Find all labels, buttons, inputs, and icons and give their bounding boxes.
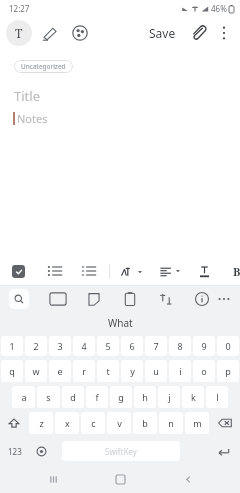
button[interactable]: Emoji xyxy=(30,436,52,466)
button[interactable]: c xyxy=(81,412,105,434)
button[interactable]: 9 xyxy=(193,336,215,356)
button[interactable]: t xyxy=(97,360,119,382)
staticText: g xyxy=(118,391,124,403)
button[interactable]: More options xyxy=(214,22,234,44)
staticText: SwiftKey xyxy=(105,446,137,457)
button[interactable]: Enter xyxy=(206,436,240,466)
staticText: 9 xyxy=(201,340,207,352)
button[interactable]: Clipboard xyxy=(121,290,139,308)
button[interactable]: d xyxy=(62,386,84,408)
button[interactable]: Save xyxy=(145,21,180,45)
staticText: What xyxy=(108,316,133,330)
button[interactable]: Palette xyxy=(68,21,92,45)
button[interactable]: z xyxy=(29,412,53,434)
button[interactable]: Draw xyxy=(38,21,62,45)
button[interactable]: f xyxy=(86,386,108,408)
staticText: i xyxy=(179,365,182,377)
staticText: x xyxy=(65,417,70,429)
staticText: Title xyxy=(14,87,40,105)
button[interactable]: l xyxy=(206,386,228,408)
button[interactable]: Translate xyxy=(157,290,175,308)
button[interactable]: Shift xyxy=(0,410,28,436)
staticText: j xyxy=(168,391,171,403)
button[interactable]: u xyxy=(145,360,167,382)
button[interactable]: Attach xyxy=(188,22,210,44)
button[interactable]: Checklist xyxy=(12,265,25,278)
button[interactable]: s xyxy=(37,386,60,408)
button[interactable]: 6 xyxy=(121,336,143,356)
button[interactable]: Numbered list xyxy=(81,263,97,279)
staticText: w xyxy=(32,365,40,377)
button[interactable]: a xyxy=(12,386,35,408)
staticText: n xyxy=(168,417,174,429)
button[interactable]: 123 xyxy=(0,436,30,466)
button[interactable]: What xyxy=(96,313,145,333)
button[interactable]: w xyxy=(25,360,47,382)
button[interactable]: Bulleted list xyxy=(47,263,63,279)
staticText: 1 xyxy=(9,340,15,352)
staticText: 6 xyxy=(129,340,135,352)
button[interactable]: e xyxy=(49,360,71,382)
staticText: Notes xyxy=(17,111,48,126)
button[interactable]: v xyxy=(107,412,131,434)
staticText: s xyxy=(46,391,51,403)
button[interactable]: Uncategorized xyxy=(14,60,73,73)
staticText: c xyxy=(91,417,96,429)
button[interactable]: Space xyxy=(62,441,180,461)
button[interactable]: p xyxy=(217,360,239,382)
button[interactable]: Backspace xyxy=(210,410,240,436)
staticText: B xyxy=(233,264,237,279)
button[interactable]: Recents xyxy=(38,466,68,493)
button[interactable]: k xyxy=(182,386,204,408)
button[interactable]: More xyxy=(214,290,234,308)
button[interactable]: Font size xyxy=(120,264,143,279)
staticText: 3 xyxy=(57,340,63,352)
staticText: a xyxy=(21,391,27,403)
button[interactable]: j xyxy=(158,386,180,408)
button[interactable]: m xyxy=(185,412,209,434)
button[interactable]: i xyxy=(169,360,191,382)
button[interactable]: 3 xyxy=(49,336,71,356)
button[interactable]: Alignment xyxy=(159,264,181,278)
staticText: e xyxy=(57,365,63,377)
staticText: l xyxy=(216,391,219,403)
button[interactable]: o xyxy=(193,360,215,382)
staticText: m xyxy=(193,417,202,429)
staticText: k xyxy=(191,391,196,403)
button[interactable]: x xyxy=(55,412,79,434)
staticText: o xyxy=(201,365,207,377)
button[interactable]: GIF xyxy=(49,290,67,308)
button[interactable]: 4 xyxy=(73,336,95,356)
staticText: v xyxy=(117,417,122,429)
button[interactable]: 7 xyxy=(145,336,167,356)
button[interactable]: Info xyxy=(193,290,211,308)
button[interactable]: 0 xyxy=(217,336,239,356)
staticText: 2 xyxy=(33,340,39,352)
staticText: 7 xyxy=(153,340,159,352)
button[interactable]: Sticker xyxy=(85,290,103,308)
button[interactable]: Text mode xyxy=(6,20,32,46)
staticText: u xyxy=(153,365,159,377)
button[interactable]: y xyxy=(121,360,143,382)
button[interactable]: 8 xyxy=(169,336,191,356)
button[interactable]: h xyxy=(134,386,156,408)
button[interactable]: 5 xyxy=(97,336,119,356)
staticText: 8 xyxy=(177,340,183,352)
button[interactable]: Text color xyxy=(197,264,212,279)
staticText: d xyxy=(70,391,76,403)
button[interactable]: n xyxy=(159,412,183,434)
button[interactable]: b xyxy=(133,412,157,434)
staticText: 12:27 xyxy=(9,3,30,14)
button[interactable]: 1 xyxy=(1,336,23,356)
button[interactable]: Back xyxy=(173,466,203,493)
button[interactable]: q xyxy=(1,360,23,382)
staticText: 5 xyxy=(105,340,111,352)
button[interactable]: Home xyxy=(105,466,135,493)
button[interactable]: r xyxy=(73,360,95,382)
button[interactable]: Search xyxy=(9,289,29,309)
button[interactable]: 2 xyxy=(25,336,47,356)
staticText: b xyxy=(142,417,148,429)
staticText: f xyxy=(95,391,99,403)
button[interactable]: B xyxy=(230,261,240,282)
button[interactable]: g xyxy=(110,386,132,408)
